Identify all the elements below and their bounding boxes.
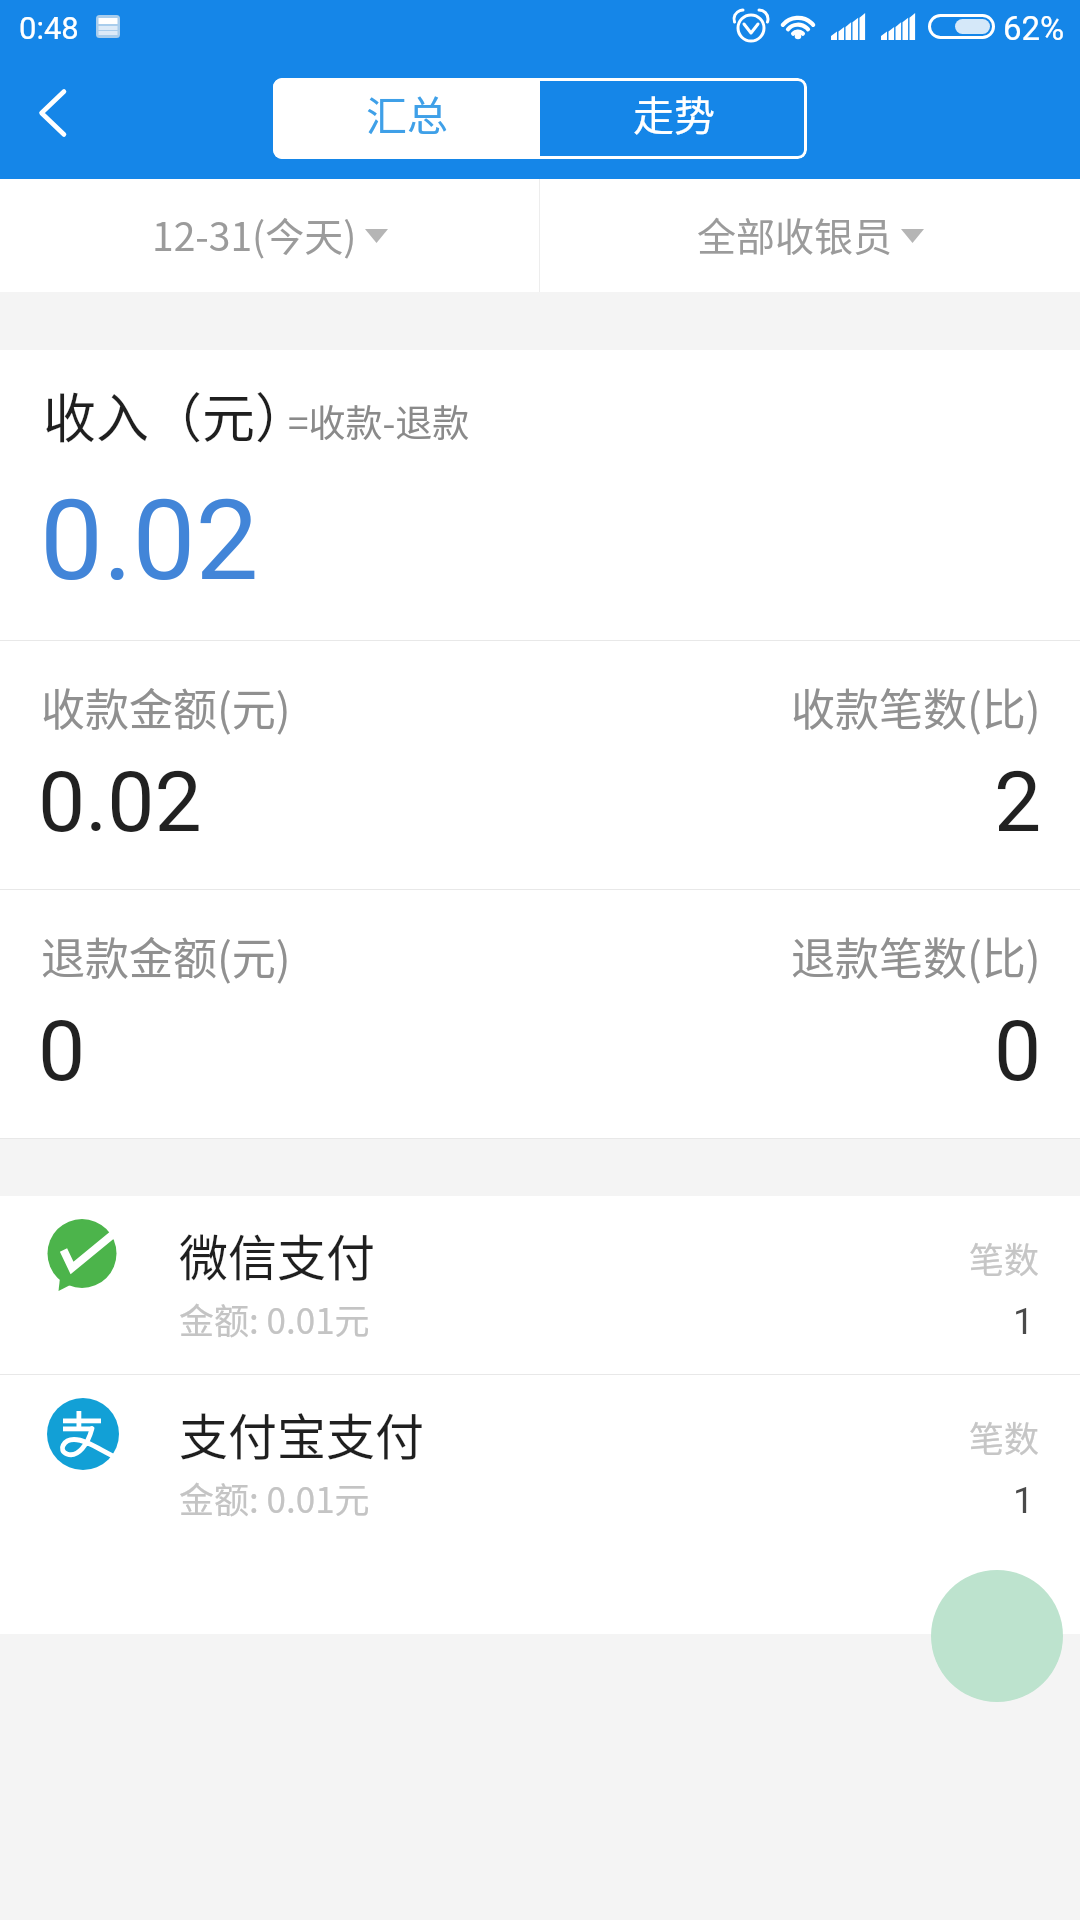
staticText: 支付宝支付	[179, 1398, 425, 1469]
button[interactable]: Back	[2, 64, 102, 174]
staticText: 0.02	[38, 753, 202, 851]
staticText: 0	[994, 1002, 1042, 1100]
staticText: 0:48	[19, 10, 79, 46]
staticText: 62%	[1003, 9, 1065, 48]
staticText: 收入（元）	[43, 377, 308, 454]
staticText: 全部收银员	[697, 206, 893, 262]
staticText: 退款笔数(比)	[791, 924, 1041, 988]
staticText: 微信支付	[179, 1219, 376, 1290]
staticText: 笔数	[969, 1411, 1040, 1462]
button[interactable]: 汇总	[273, 78, 540, 159]
button[interactable]: 走势	[540, 78, 807, 159]
staticText: 汇总	[366, 83, 448, 142]
staticText: 2	[994, 753, 1042, 851]
staticText: 1	[1013, 1479, 1034, 1522]
staticText: 0.02	[40, 475, 259, 606]
staticText: 12-31(今天)	[152, 206, 357, 262]
staticText: 收款笔数(比)	[791, 675, 1041, 739]
button[interactable]: 12-31(今天)	[0, 179, 539, 292]
staticText: 退款金额(元)	[41, 924, 291, 988]
staticText: 金额: 0.01元	[179, 1472, 370, 1523]
staticText: 走势	[633, 83, 715, 142]
staticText: 收款金额(元)	[41, 675, 291, 739]
button[interactable]: 支付宝支付	[0, 1375, 1080, 1553]
staticText: 0	[38, 1002, 86, 1100]
staticText: 金额: 0.01元	[179, 1293, 370, 1344]
staticText: 1	[1013, 1300, 1034, 1343]
button[interactable]: 微信支付	[0, 1196, 1080, 1374]
button[interactable]: 全部收银员	[540, 179, 1080, 292]
button[interactable]: Add	[931, 1570, 1063, 1702]
staticText: =收款-退款	[288, 394, 470, 448]
staticText: 笔数	[969, 1232, 1040, 1283]
